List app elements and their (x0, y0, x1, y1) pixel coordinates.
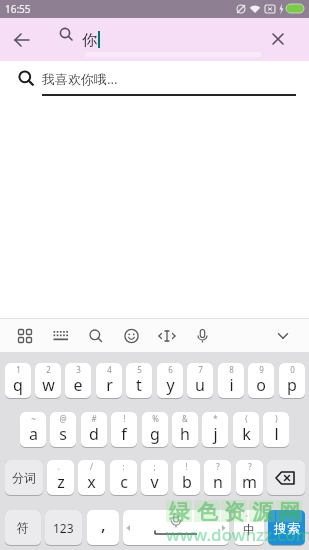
staticText: c (120, 471, 128, 493)
button[interactable]: / (78, 460, 105, 496)
button[interactable]: ; (141, 460, 168, 496)
button[interactable]: 8 (218, 363, 244, 399)
button[interactable]: 9 (248, 363, 274, 399)
staticText: k (242, 423, 251, 445)
staticText: i (229, 374, 234, 396)
button[interactable]: & (172, 412, 198, 448)
button[interactable]: : (110, 460, 137, 496)
button[interactable] (123, 510, 229, 546)
staticText: u (195, 374, 205, 396)
button[interactable]: ! (111, 412, 137, 448)
staticText: 网 (279, 499, 300, 523)
staticText: 4 (107, 364, 112, 375)
staticText: 搜索 (274, 520, 300, 536)
staticText: g (150, 423, 160, 445)
staticText: b (182, 471, 192, 493)
staticText: r (106, 374, 113, 396)
staticText: y (166, 374, 175, 396)
staticText: x (87, 471, 96, 493)
button[interactable]: * (202, 412, 228, 448)
staticText: ! (185, 461, 188, 472)
staticText: 16:55 (5, 2, 31, 16)
staticText: 我喜欢你哦... (42, 70, 118, 88)
staticText: ( (245, 413, 248, 424)
staticText: 5 (137, 364, 142, 375)
button[interactable]: ! (173, 460, 200, 496)
button[interactable]: # (81, 412, 107, 448)
staticText: s (59, 423, 67, 445)
staticText: ~ (31, 413, 36, 424)
staticText: a (29, 423, 38, 445)
button[interactable]: , (87, 510, 119, 546)
button[interactable]: 2 (35, 363, 61, 399)
staticText: e (73, 374, 83, 396)
button[interactable]: 、 (47, 460, 74, 496)
button[interactable]: 5 (126, 363, 152, 399)
button[interactable]: 符 (5, 510, 41, 546)
button[interactable] (267, 460, 305, 496)
button[interactable] (8, 26, 36, 54)
staticText: m (242, 471, 257, 493)
staticText: q (13, 374, 23, 396)
staticText: p (287, 374, 297, 396)
staticText: j (213, 423, 218, 445)
staticText: n (213, 471, 223, 493)
button[interactable]: @ (50, 412, 76, 448)
staticText: , (101, 513, 106, 536)
staticText: t (136, 374, 142, 396)
staticText: 9 (259, 364, 264, 375)
staticText: f (121, 423, 127, 445)
button[interactable]: ? (236, 460, 263, 496)
staticText: @ (59, 413, 67, 424)
button[interactable]: 4 (96, 363, 122, 399)
staticText: 、 (57, 461, 65, 471)
staticText: 分词 (12, 470, 36, 485)
staticText: z (57, 471, 65, 493)
button[interactable]: ( (233, 412, 259, 448)
staticText: 123 (53, 520, 74, 536)
staticText: ) (275, 413, 278, 424)
staticText: l (274, 423, 279, 445)
staticText: ! (123, 413, 126, 424)
button[interactable]: ) (263, 412, 289, 448)
staticText: & (182, 413, 188, 424)
button[interactable]: ? (204, 460, 231, 496)
staticText: 7 (198, 364, 203, 375)
button[interactable]: 我喜欢你哦... (0, 61, 309, 97)
staticText: / (90, 461, 93, 472)
staticText: w (42, 374, 55, 396)
staticText: 绿 (169, 499, 190, 523)
staticText: * (213, 413, 218, 424)
staticText: 符 (17, 520, 29, 535)
button[interactable]: 3 (65, 363, 91, 399)
button[interactable]: 123 (45, 510, 82, 546)
staticText: % (152, 413, 159, 424)
staticText: ; (153, 461, 156, 472)
staticText: 。 (245, 510, 253, 518)
staticText: d (89, 423, 99, 445)
staticText: h (180, 423, 190, 445)
button[interactable]: 搜索 (268, 510, 305, 546)
button[interactable]: 。 (234, 510, 264, 546)
button[interactable]: 7 (187, 363, 213, 399)
staticText: 源 (252, 499, 273, 523)
staticText: : (122, 461, 125, 472)
staticText: 色 (197, 499, 218, 523)
staticText: ? (248, 461, 252, 472)
button[interactable]: 1 (5, 363, 31, 399)
button[interactable]: 分词 (5, 460, 43, 496)
button[interactable]: % (142, 412, 168, 448)
button[interactable]: ~ (20, 412, 46, 448)
staticText: 资 (224, 499, 245, 523)
button[interactable]: 0 (279, 363, 305, 399)
staticText: 2 (46, 364, 51, 375)
button[interactable] (264, 25, 292, 53)
button[interactable]: 6 (157, 363, 183, 399)
staticText: 8 (229, 364, 234, 375)
staticText: 3 (76, 364, 81, 375)
staticText: ? (216, 461, 220, 472)
staticText: 6 (168, 364, 173, 375)
staticText: # (91, 413, 97, 424)
staticText: 你 (82, 31, 97, 50)
staticText: 1 (16, 364, 21, 375)
